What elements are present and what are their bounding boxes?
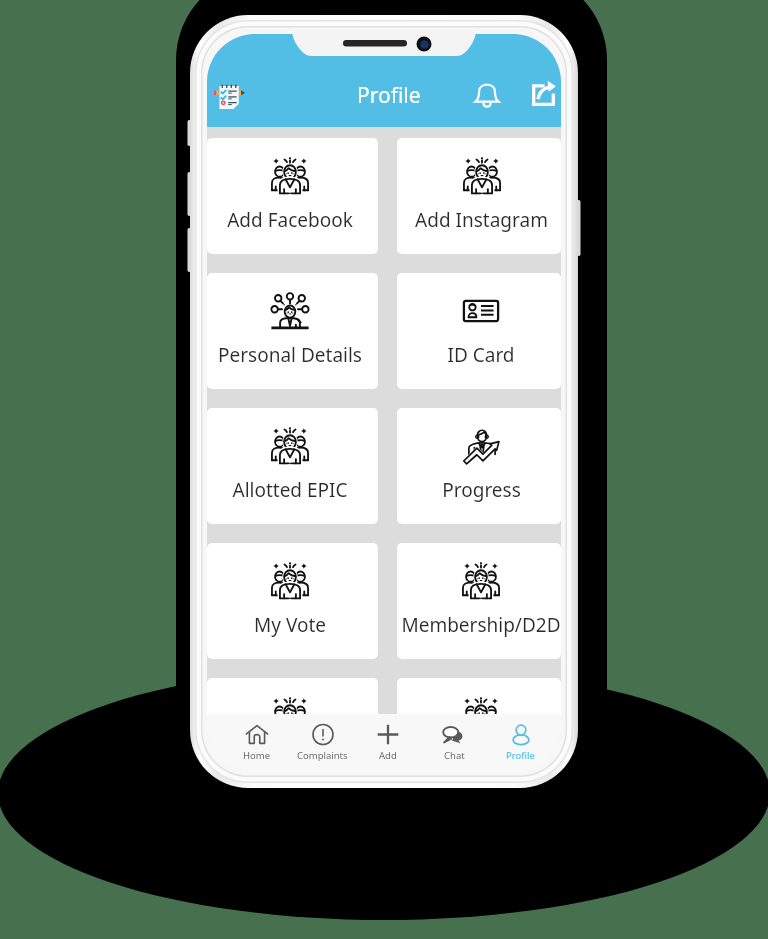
staticText: Booth	[454, 747, 508, 773]
staticText: Add	[379, 749, 397, 762]
button[interactable]: Complaints	[289, 714, 355, 775]
button[interactable]: Allotted EPIC	[207, 408, 378, 524]
button[interactable]: Add	[355, 714, 421, 775]
button[interactable]: Add Instagram	[397, 138, 561, 254]
button[interactable]: Notifications	[465, 72, 509, 116]
staticText: ID Card	[447, 342, 515, 368]
staticText: Add Instagram	[415, 207, 548, 233]
staticText: Complaints	[297, 749, 348, 762]
staticText: Personal Details	[218, 342, 362, 368]
button[interactable]: Profile	[487, 714, 553, 775]
staticText: Voter List	[248, 747, 332, 773]
button[interactable]: ID Card	[397, 273, 561, 389]
button[interactable]: Voter List	[207, 678, 378, 775]
staticText: Home	[243, 749, 271, 762]
staticText: Chat	[444, 749, 465, 762]
staticText: Profile	[506, 749, 535, 762]
button[interactable]: Add Facebook	[207, 138, 378, 254]
button[interactable]: Home	[224, 714, 289, 775]
button[interactable]: Chat	[421, 714, 487, 775]
button[interactable]: Personal Details	[207, 273, 378, 389]
button[interactable]: Share	[521, 72, 561, 116]
staticText: Add Facebook	[227, 207, 353, 233]
button[interactable]: My Vote	[207, 543, 378, 659]
button[interactable]: Progress	[397, 408, 561, 524]
staticText: Allotted EPIC	[232, 477, 348, 503]
staticText: My Vote	[254, 612, 326, 638]
staticText: Profile	[357, 81, 421, 110]
button[interactable]: Booth	[397, 678, 561, 775]
button[interactable]: Tasks	[207, 73, 252, 118]
staticText: Membership/D2D	[401, 612, 561, 638]
button[interactable]: Membership/D2D	[397, 543, 561, 659]
staticText: Progress	[442, 477, 521, 503]
